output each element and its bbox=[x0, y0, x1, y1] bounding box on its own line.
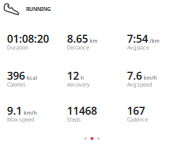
staticText: 7.6 bbox=[127, 68, 142, 83]
staticText: RUNNING bbox=[26, 5, 51, 13]
staticText: kcal bbox=[26, 74, 36, 81]
staticText: 167 bbox=[127, 103, 145, 118]
staticText: km bbox=[89, 37, 97, 44]
staticText: 11468 bbox=[67, 103, 97, 118]
staticText: Max speed bbox=[7, 116, 34, 123]
staticText: /km bbox=[149, 37, 159, 44]
staticText: 396 bbox=[7, 68, 25, 83]
staticText: Cadence bbox=[127, 116, 148, 123]
staticText: 8.65 bbox=[67, 31, 88, 46]
staticText: km/h bbox=[143, 74, 156, 81]
staticText: Steps bbox=[67, 116, 81, 123]
staticText: 01:08:20 bbox=[7, 31, 49, 46]
staticText: 12 bbox=[67, 68, 79, 83]
staticText: Duration bbox=[7, 44, 28, 51]
staticText: km/h bbox=[23, 109, 36, 116]
staticText: h bbox=[80, 74, 83, 81]
staticText: Distance bbox=[67, 44, 89, 51]
staticText: Avg speed bbox=[127, 81, 152, 88]
staticText: Calories bbox=[7, 81, 26, 88]
staticText: 9.1 bbox=[7, 103, 22, 118]
staticText: Recovery bbox=[67, 81, 90, 88]
staticText: Avg pace bbox=[127, 44, 149, 51]
staticText: 7:54 bbox=[127, 31, 148, 46]
